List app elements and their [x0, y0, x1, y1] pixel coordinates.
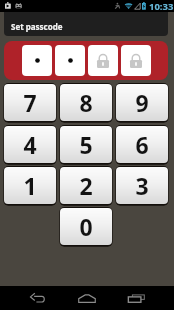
button[interactable]: Empty passcode slot	[121, 45, 151, 76]
staticText: 4	[23, 129, 37, 160]
button[interactable]: Set passcode	[4, 12, 168, 36]
button[interactable]: Empty passcode slot	[88, 45, 118, 76]
staticText: 0	[79, 211, 93, 242]
button[interactable]: 1	[4, 167, 56, 204]
staticText: 10:33	[149, 0, 174, 12]
button[interactable]: Recent apps	[118, 286, 154, 310]
staticText: 2	[79, 170, 93, 201]
staticText: 6	[135, 129, 149, 160]
button[interactable]: 9	[116, 84, 168, 121]
staticText: 5	[79, 129, 93, 160]
button[interactable]: 4	[4, 126, 56, 163]
staticText: 1	[23, 170, 37, 201]
button[interactable]: Back	[20, 286, 56, 310]
button[interactable]: 8	[60, 84, 112, 121]
staticText: 8	[79, 87, 93, 118]
button[interactable]: Entered digit	[55, 45, 85, 76]
button[interactable]: 7	[4, 84, 56, 121]
button[interactable]: Home	[69, 286, 105, 310]
button[interactable]: 5	[60, 126, 112, 163]
button[interactable]: 3	[116, 167, 168, 204]
button[interactable]: 0	[60, 208, 112, 245]
staticText: 9	[135, 87, 149, 118]
staticText: 3	[135, 170, 149, 201]
staticText: 7	[23, 87, 37, 118]
button[interactable]: 2	[60, 167, 112, 204]
staticText: Set passcode	[11, 21, 63, 32]
button[interactable]: Entered digit	[22, 45, 52, 76]
button[interactable]: 6	[116, 126, 168, 163]
